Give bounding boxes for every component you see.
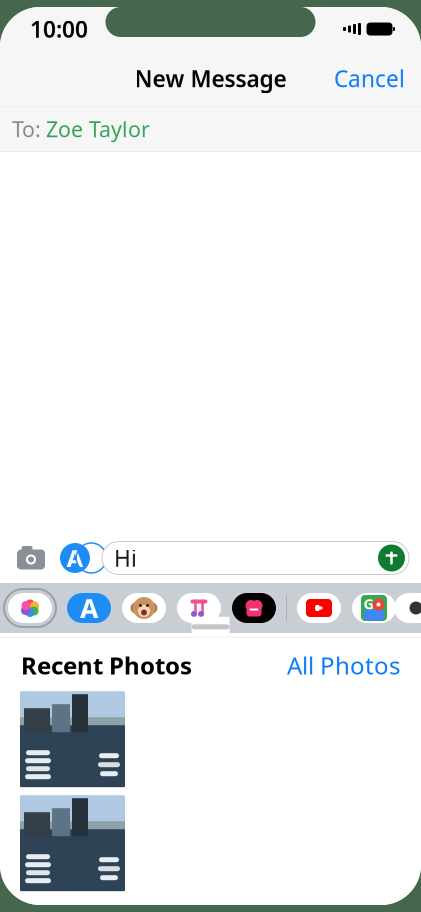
staticText: To:	[12, 115, 41, 143]
staticText: G	[363, 594, 374, 613]
staticText: A	[80, 590, 98, 626]
staticText: Zoe Taylor	[46, 115, 150, 143]
button[interactable]: Maps	[351, 588, 397, 628]
button[interactable]: App Store	[66, 588, 112, 628]
button[interactable]: To:	[0, 106, 421, 151]
button[interactable]: Apple Pay	[231, 588, 277, 628]
staticText: Cancel	[334, 63, 405, 93]
staticText: 10:00	[30, 14, 88, 44]
staticText: New Message	[134, 63, 286, 93]
button[interactable]: Send	[376, 542, 407, 573]
button[interactable]: Photo of marina	[20, 691, 125, 787]
button[interactable]: Photo of marina	[20, 795, 125, 891]
button[interactable]: All Photos	[287, 649, 400, 681]
staticText: A	[66, 542, 83, 574]
staticText: Hi	[114, 543, 137, 573]
button[interactable]: YouTube	[296, 588, 342, 628]
button[interactable]: Camera	[14, 541, 48, 575]
button[interactable]: Music	[176, 588, 222, 628]
button[interactable]: Memoji	[121, 588, 167, 628]
button[interactable]: Apps	[58, 541, 92, 575]
staticText: All Photos	[287, 649, 400, 681]
button[interactable]: Photos	[3, 588, 57, 628]
staticText: Recent Photos	[21, 649, 192, 681]
button[interactable]: Cancel	[318, 53, 421, 103]
